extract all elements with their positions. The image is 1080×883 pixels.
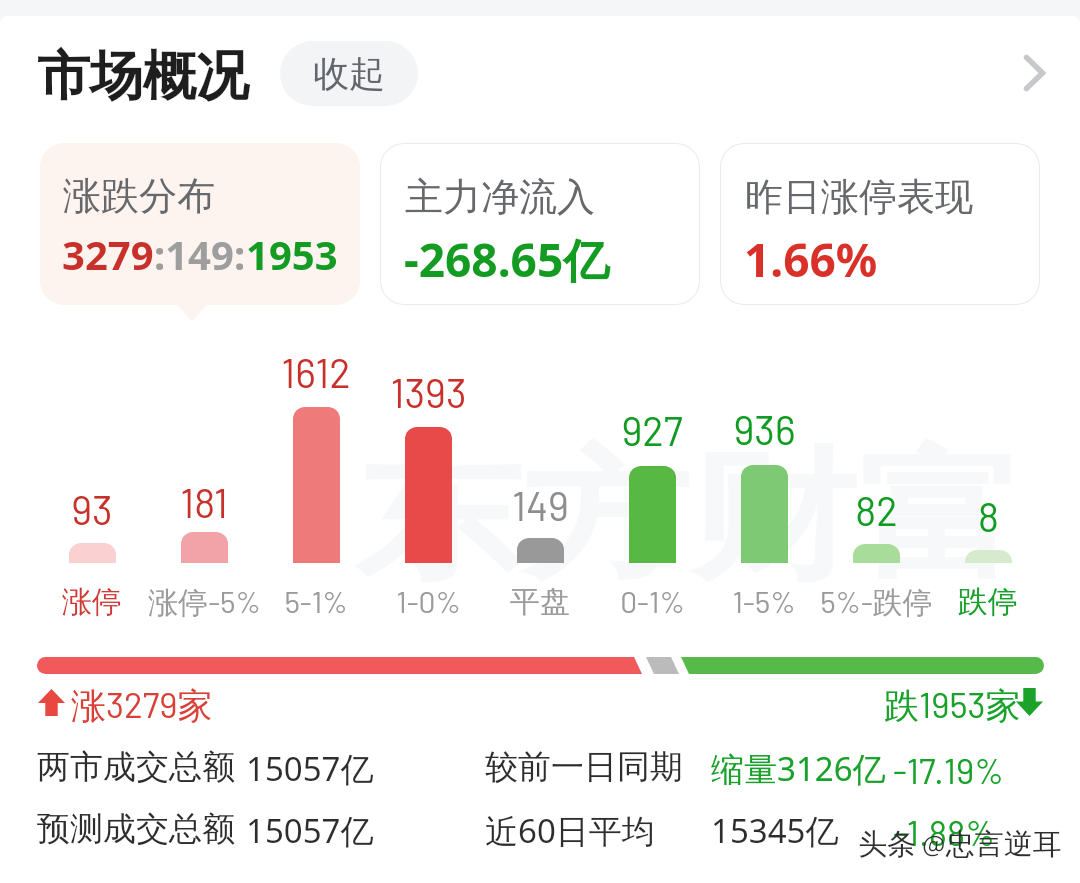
button[interactable]: Expand market overview xyxy=(1004,43,1064,103)
staticText: 昨日涨停表现 xyxy=(745,173,973,221)
staticText: 1393 xyxy=(390,368,467,416)
staticText: 主力净流入 xyxy=(405,173,595,221)
staticText: 82 xyxy=(855,486,898,534)
staticText: 涨3279家 xyxy=(71,683,213,728)
staticText: 较前一日同期 xyxy=(485,746,683,788)
staticText: 93 xyxy=(71,485,113,533)
staticText: 1-0% xyxy=(396,583,461,619)
button[interactable]: 昨日涨停表现 xyxy=(721,144,1039,304)
staticText: 跌停 xyxy=(958,583,1018,621)
staticText: 涨停-5% xyxy=(148,583,261,622)
button[interactable]: 主力净流入 xyxy=(381,144,699,304)
staticText: 东方财富 xyxy=(354,429,1026,605)
staticText: 两市成交总额 xyxy=(37,746,235,788)
staticText: 3279 xyxy=(62,227,154,281)
staticText: 15057亿 xyxy=(246,808,374,853)
button[interactable]: 涨跌分布 xyxy=(40,143,360,305)
staticText: 5%-跌停 xyxy=(820,583,933,622)
staticText: 近60日平均 xyxy=(485,808,655,853)
staticText: 跌1953家 xyxy=(884,683,1021,728)
staticText: 149 xyxy=(512,481,569,529)
staticText: 181 xyxy=(180,478,228,526)
staticText: 收起 xyxy=(313,51,385,96)
staticText: 1612 xyxy=(281,348,351,396)
staticText: 936 xyxy=(733,405,796,453)
staticText: 15345亿 xyxy=(711,808,839,853)
staticText: 0-1% xyxy=(620,583,685,619)
staticText: 市场概况 xyxy=(37,43,249,110)
staticText: 涨跌分布 xyxy=(63,172,215,220)
staticText: 平盘 xyxy=(510,583,570,621)
staticText: 15057亿 xyxy=(246,746,374,791)
staticText: 5-1% xyxy=(284,583,348,619)
staticText: 涨停 xyxy=(62,583,122,621)
staticText: 缩量3126亿 xyxy=(711,746,886,791)
button[interactable]: 收起 xyxy=(280,41,418,106)
staticText: :149: xyxy=(154,227,246,281)
staticText: 预测成交总额 xyxy=(37,808,235,850)
staticText: 8 xyxy=(978,492,999,540)
staticText: 1.66% xyxy=(744,228,878,291)
staticText: -1.88% xyxy=(893,811,995,853)
staticText: 1953 xyxy=(246,227,338,281)
staticText: 1-5% xyxy=(732,583,796,619)
staticText: -17.19% xyxy=(893,749,1004,791)
staticText: 927 xyxy=(621,406,683,454)
staticText: 头条 @忠言逆耳 xyxy=(858,825,1062,863)
staticText: -268.65亿 xyxy=(404,228,610,291)
